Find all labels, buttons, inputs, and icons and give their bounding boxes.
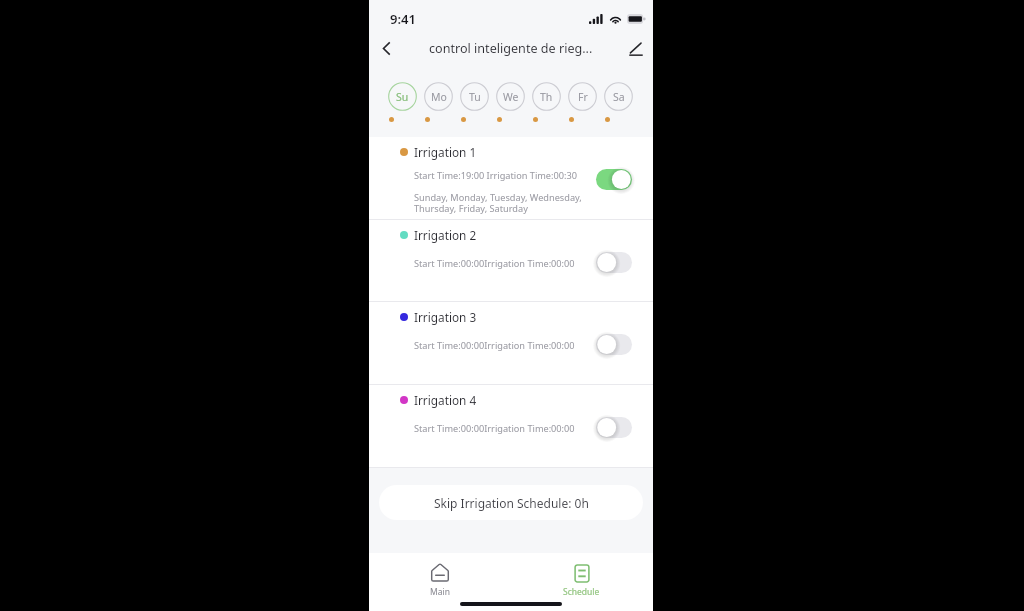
button[interactable]: Th	[532, 82, 561, 122]
button[interactable]: Irrigation 1	[369, 137, 653, 220]
staticText: Su	[396, 90, 409, 104]
button[interactable]: Su	[388, 82, 417, 122]
staticText: Irrigation 4	[414, 392, 477, 408]
button[interactable]: Edit	[619, 33, 653, 64]
button[interactable]: Schedule	[551, 561, 612, 600]
staticText: Irrigation 1	[414, 144, 477, 160]
staticText: Start Time:00:00Irrigation Time:00:00	[414, 339, 575, 352]
staticText: Irrigation 3	[414, 309, 477, 325]
staticText: Main	[430, 586, 450, 598]
staticText: Sunday, Monday, Tuesday, Wednesday, Thur…	[414, 191, 582, 215]
staticText: Sa	[613, 90, 625, 104]
button[interactable]: Skip Irrigation Schedule: 0h	[379, 485, 643, 520]
button[interactable]: Irrigation 3	[369, 302, 653, 385]
staticText: Start Time:19:00 Irrigation Time:00:30	[414, 169, 577, 182]
button[interactable]: Irrigation 2	[369, 220, 653, 302]
button[interactable]: Tu	[460, 82, 489, 122]
button[interactable]: Sa	[604, 82, 633, 122]
staticText: Tu	[469, 90, 481, 104]
staticText: Fr	[578, 90, 588, 104]
button[interactable]: Disabled	[594, 415, 634, 440]
staticText: Th	[540, 90, 553, 104]
staticText: We	[503, 90, 519, 104]
staticText: Start Time:00:00Irrigation Time:00:00	[414, 257, 575, 270]
button[interactable]: Mo	[424, 82, 453, 122]
button[interactable]: We	[496, 82, 525, 122]
button[interactable]: Disabled	[594, 250, 634, 275]
staticText: 9:41	[390, 10, 416, 28]
button[interactable]: Back	[369, 33, 403, 64]
staticText: Skip Irrigation Schedule: 0h	[434, 495, 589, 511]
button[interactable]: Enabled	[594, 167, 634, 192]
staticText: control inteligente de rieg...	[429, 40, 593, 57]
button[interactable]: Fr	[568, 82, 597, 122]
button[interactable]: Irrigation 4	[369, 385, 653, 468]
staticText: Start Time:00:00Irrigation Time:00:00	[414, 422, 575, 435]
staticText: Mo	[431, 90, 447, 104]
staticText: Schedule	[563, 586, 600, 598]
staticText: Irrigation 2	[414, 227, 477, 243]
button[interactable]: Main	[418, 561, 462, 600]
button[interactable]: Disabled	[594, 332, 634, 357]
